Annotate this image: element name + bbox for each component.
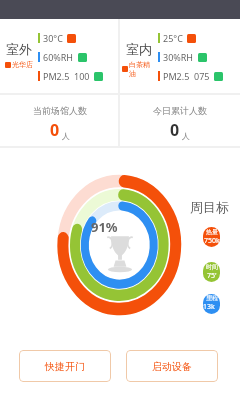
staticText: 750k: [204, 236, 220, 246]
staticText: 13km: [203, 302, 220, 314]
staticText: 30%RH: [163, 51, 194, 63]
staticText: 0: [170, 119, 180, 141]
staticText: 白茶精油: [129, 60, 156, 78]
staticText: 人: [182, 131, 190, 141]
staticText: 周目标: [190, 199, 229, 215]
staticText: 快捷开门: [45, 360, 85, 373]
staticText: 里程: [206, 294, 218, 302]
staticText: PM2.5 100: [43, 70, 90, 82]
staticText: 25°C: [163, 32, 183, 44]
staticText: 0: [50, 119, 60, 141]
staticText: 热量: [206, 228, 218, 236]
staticText: 60%RH: [43, 51, 74, 63]
staticText: PM2.5 075: [163, 70, 210, 82]
staticText: 启动设备: [152, 360, 192, 373]
button[interactable]: 里程: [203, 294, 220, 314]
staticText: 91%: [91, 218, 118, 236]
staticText: 30°C: [43, 32, 63, 44]
button[interactable]: 启动设备: [126, 350, 218, 382]
staticText: 人: [62, 131, 70, 141]
button[interactable]: 热量: [203, 227, 220, 247]
staticText: 今日累计人数: [153, 105, 207, 116]
staticText: 时间: [206, 263, 218, 271]
staticText: 室外: [6, 41, 32, 57]
button[interactable]: 时间: [203, 262, 220, 282]
staticText: 75': [207, 271, 217, 281]
button[interactable]: 快捷开门: [19, 350, 111, 382]
staticText: 室内: [126, 41, 152, 57]
staticText: 光华店: [12, 60, 33, 69]
staticText: 当前场馆人数: [33, 105, 87, 116]
